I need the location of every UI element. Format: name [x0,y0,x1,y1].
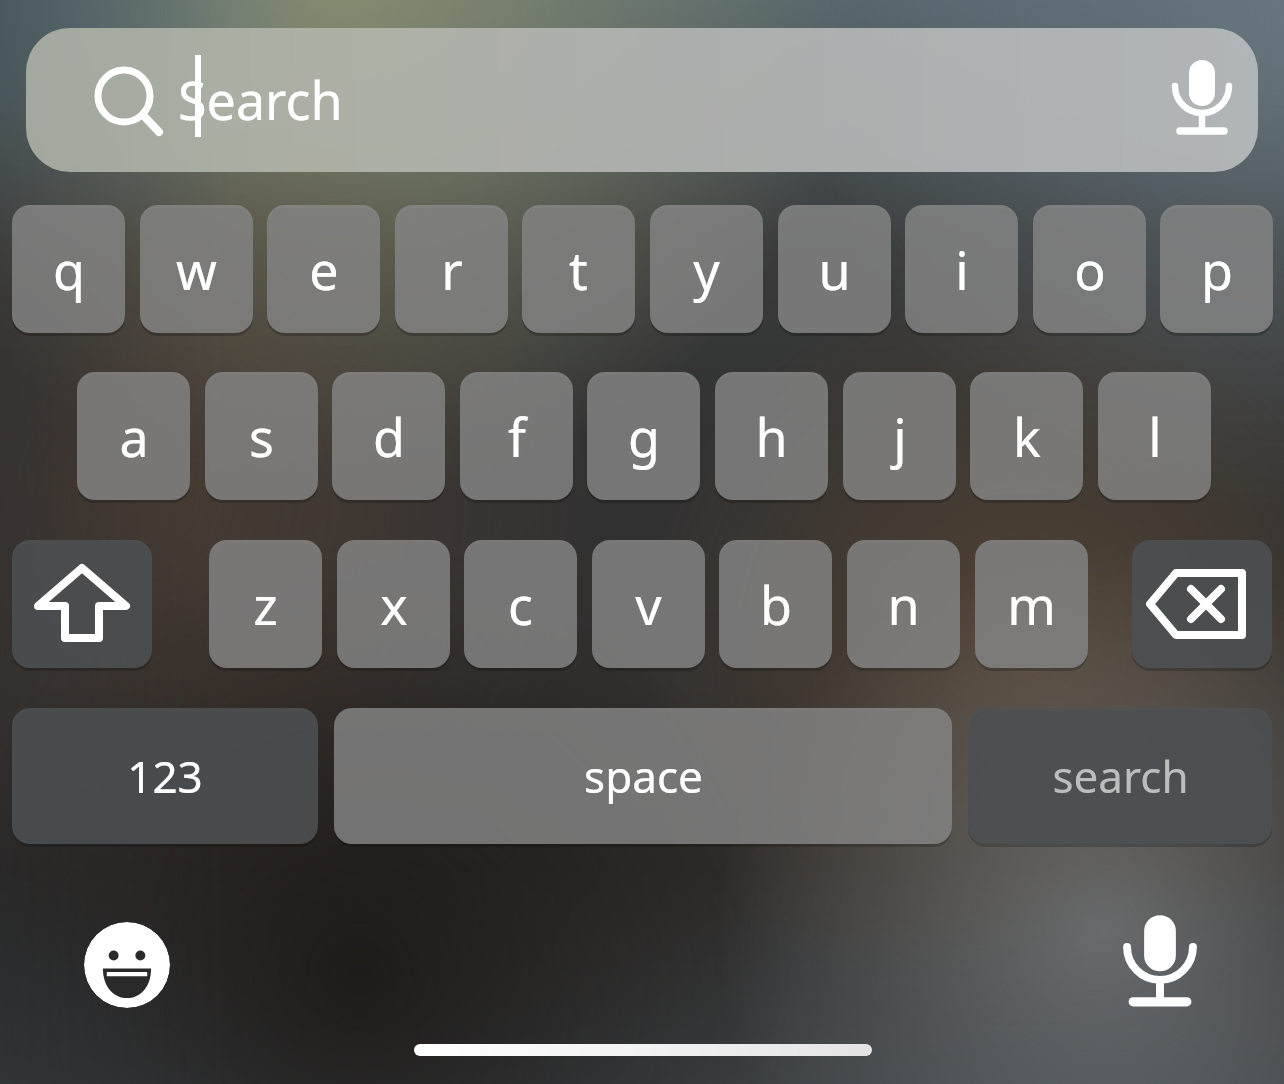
button[interactable]: c [464,540,577,668]
button[interactable]: f [460,372,573,500]
button[interactable]: Shift [12,540,152,668]
staticText: h [755,401,788,472]
button[interactable]: m [975,540,1088,668]
staticText: b [760,569,792,640]
staticText: z [253,569,278,640]
button[interactable]: n [847,540,960,668]
staticText: q [53,234,85,305]
button[interactable]: space [334,708,952,844]
button[interactable]: d [332,372,445,500]
staticText: search [1052,746,1189,806]
button[interactable]: j [843,372,956,500]
staticText: 123 [127,746,203,806]
button[interactable]: y [650,205,763,333]
button[interactable]: Emoji [84,922,170,1008]
button[interactable]: q [12,205,125,333]
button[interactable]: k [970,372,1083,500]
staticText: c [508,569,533,640]
button[interactable]: r [395,205,508,333]
button[interactable]: z [209,540,322,668]
button[interactable]: l [1098,372,1211,500]
button[interactable]: b [719,540,832,668]
button[interactable]: Dictation [1114,918,1206,1010]
button[interactable]: a [77,372,190,500]
staticText: v [635,569,662,640]
button[interactable]: h [715,372,828,500]
staticText: d [373,401,405,472]
button[interactable]: o [1033,205,1146,333]
button[interactable]: x [337,540,450,668]
button[interactable]: w [140,205,253,333]
button[interactable]: Backspace [1132,540,1272,668]
staticText: n [887,569,920,640]
staticText: w [176,234,217,305]
staticText: e [309,234,339,305]
staticText: Search [178,64,343,135]
staticText: m [1007,569,1056,640]
button[interactable]: v [592,540,705,668]
staticText: f [508,401,526,472]
staticText: k [1013,401,1041,472]
staticText: o [1074,234,1106,305]
button[interactable]: 123 [12,708,318,844]
staticText: l [1148,401,1162,472]
button[interactable]: e [267,205,380,333]
staticText: a [119,401,149,472]
staticText: x [380,569,408,640]
button[interactable]: u [778,205,891,333]
button[interactable]: Voice search [1166,64,1238,136]
button[interactable]: g [587,372,700,500]
staticText: t [569,234,588,305]
staticText: s [249,401,274,472]
button[interactable]: t [522,205,635,333]
staticText: u [818,234,851,305]
button[interactable]: s [205,372,318,500]
button[interactable]: i [905,205,1018,333]
button[interactable]: search [968,708,1272,844]
staticText: y [693,234,720,305]
button[interactable]: Search [26,28,1258,172]
staticText: p [1201,234,1233,305]
staticText: r [441,234,463,305]
staticText: j [893,401,907,472]
staticText: g [628,401,660,472]
button[interactable]: p [1160,205,1273,333]
staticText: space [584,746,703,806]
staticText: i [955,234,969,305]
